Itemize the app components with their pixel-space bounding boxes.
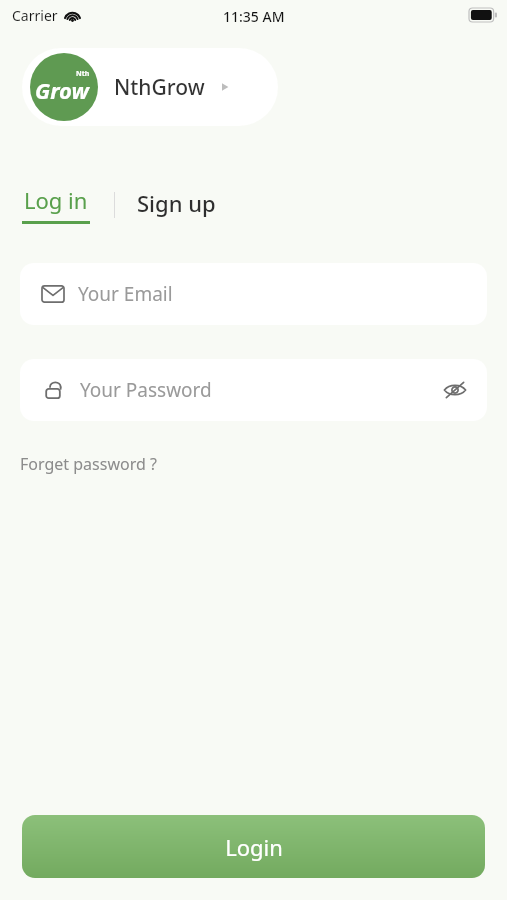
button[interactable]: Grow <box>22 48 278 126</box>
button[interactable]: Log in <box>20 185 92 224</box>
button[interactable]: Forget password ? <box>18 449 159 479</box>
staticText: Nth <box>76 69 90 79</box>
button[interactable]: Sign up <box>135 190 218 220</box>
staticText: Your Password <box>80 377 212 403</box>
staticText: Login <box>225 832 283 862</box>
staticText: Carrier <box>12 6 58 25</box>
button[interactable]: Your Password <box>20 359 487 421</box>
staticText: Log in <box>24 185 88 215</box>
staticText: Your Email <box>78 281 173 307</box>
staticText: Forget password ? <box>20 453 157 475</box>
staticText: NthGrow <box>114 73 205 102</box>
button[interactable]: Login <box>22 815 485 878</box>
staticText: Grow <box>35 75 89 105</box>
staticText: 11:35 AM <box>223 7 285 26</box>
button[interactable]: Show password <box>433 368 477 412</box>
staticText: Sign up <box>137 188 216 218</box>
button[interactable]: Your Email <box>20 263 487 325</box>
